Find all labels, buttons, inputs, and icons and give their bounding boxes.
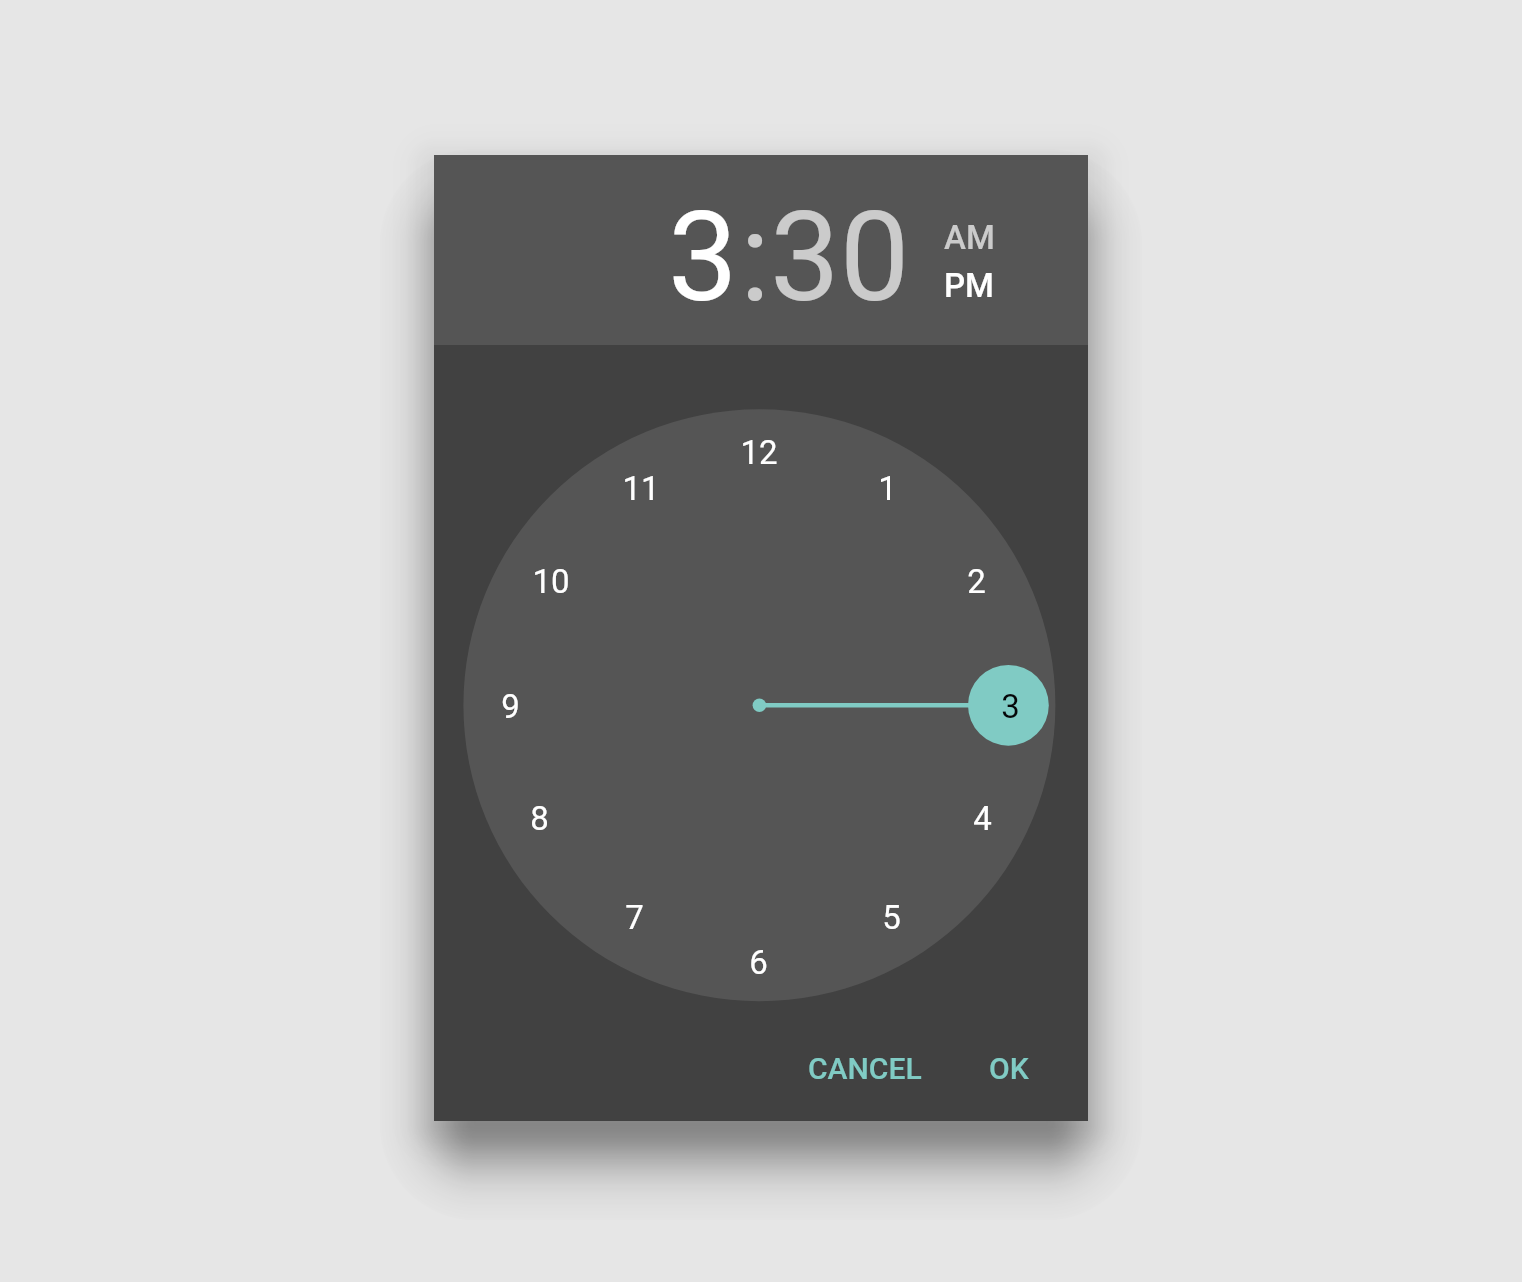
button[interactable]: 9: [471, 677, 549, 735]
button[interactable]: 1: [848, 459, 926, 517]
staticText: 4: [973, 799, 992, 838]
button[interactable]: 3: [971, 677, 1049, 735]
button[interactable]: 5: [852, 888, 930, 946]
staticText: 10: [532, 562, 570, 601]
staticText: 3: [1001, 687, 1020, 726]
button[interactable]: PM: [928, 262, 1010, 313]
staticText: OK: [989, 1051, 1029, 1086]
button[interactable]: Clock dial, select hour: [463, 409, 1055, 1001]
staticText: 7: [625, 898, 644, 937]
staticText: 9: [501, 687, 520, 726]
staticText: :30: [740, 185, 910, 330]
button[interactable]: 10: [512, 552, 590, 610]
staticText: CANCEL: [808, 1051, 922, 1086]
staticText: 1: [878, 469, 897, 508]
staticText: AM: [944, 218, 995, 257]
button[interactable]: CANCEL: [784, 1033, 946, 1104]
button[interactable]: 8: [500, 789, 578, 847]
button[interactable]: 12: [720, 423, 798, 481]
staticText: 2: [967, 562, 986, 601]
staticText: 5: [882, 898, 901, 937]
button[interactable]: 6: [719, 933, 797, 991]
staticText: 8: [530, 799, 549, 838]
button[interactable]: 11: [602, 459, 680, 517]
button[interactable]: :30: [734, 171, 922, 344]
button[interactable]: OK: [965, 1033, 1053, 1104]
button[interactable]: 7: [595, 888, 673, 946]
button[interactable]: 2: [937, 552, 1015, 610]
button[interactable]: AM: [928, 210, 1011, 261]
staticText: 6: [749, 943, 768, 982]
staticText: 12: [740, 433, 778, 472]
staticText: 3: [668, 185, 738, 330]
staticText: PM: [944, 266, 994, 305]
button[interactable]: 3: [656, 171, 744, 344]
button[interactable]: 4: [943, 789, 1021, 847]
staticText: 11: [622, 469, 660, 508]
